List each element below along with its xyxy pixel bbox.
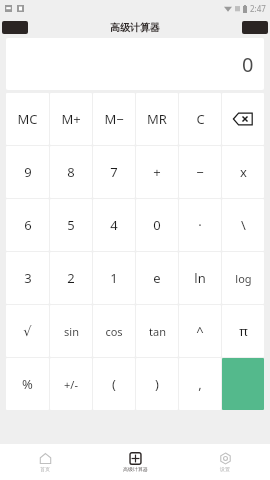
staticText: sin	[64, 324, 79, 339]
button[interactable]: 0	[6, 38, 264, 90]
staticText: 2	[67, 269, 75, 287]
button[interactable]: 5	[50, 199, 92, 251]
staticText: ln	[194, 269, 206, 287]
staticText: MR	[147, 110, 167, 128]
staticText: 9	[24, 163, 32, 181]
staticText: %	[22, 375, 33, 393]
button[interactable]: (	[93, 358, 135, 410]
staticText: ,	[198, 375, 202, 393]
staticText: 6	[24, 216, 32, 234]
button[interactable]: √	[6, 305, 49, 357]
staticText: 1	[110, 269, 118, 287]
button[interactable]: ·	[179, 199, 221, 251]
button[interactable]: 6	[6, 199, 49, 251]
button[interactable]: cos	[93, 305, 135, 357]
button[interactable]: +	[136, 146, 178, 198]
staticText: M−	[104, 110, 124, 128]
button[interactable]: π	[222, 305, 264, 357]
button[interactable]: Backspace	[222, 93, 264, 145]
staticText: log	[235, 271, 252, 286]
button[interactable]: +/-	[50, 358, 92, 410]
staticText: 高级计算器	[110, 21, 160, 34]
button[interactable]: \	[222, 199, 264, 251]
button[interactable]: 设置	[180, 444, 270, 480]
button[interactable]: sin	[50, 305, 92, 357]
staticText: 5	[67, 216, 75, 234]
staticText: 首页	[40, 466, 50, 472]
button[interactable]: 4	[93, 199, 135, 251]
button[interactable]: 3	[6, 252, 49, 304]
staticText: C	[196, 110, 205, 128]
staticText: −	[196, 163, 204, 181]
button[interactable]: MC	[6, 93, 49, 145]
staticText: 3	[24, 269, 32, 287]
button[interactable]: 0	[136, 199, 178, 251]
button[interactable]: M−	[93, 93, 135, 145]
button[interactable]: tan	[136, 305, 178, 357]
button[interactable]: %	[6, 358, 49, 410]
button[interactable]: 2	[50, 252, 92, 304]
button[interactable]: 高级计算器	[90, 444, 180, 480]
button[interactable]: C	[179, 93, 221, 145]
staticText: 2:47	[250, 3, 266, 14]
staticText: 高级计算器	[123, 466, 148, 472]
staticText: \	[241, 216, 246, 234]
button[interactable]: e	[136, 252, 178, 304]
button[interactable]: ln	[179, 252, 221, 304]
button[interactable]: MR	[136, 93, 178, 145]
staticText: (	[112, 375, 116, 393]
button[interactable]: log	[222, 252, 264, 304]
button[interactable]: −	[179, 146, 221, 198]
staticText: 8	[67, 163, 75, 181]
staticText: 0	[242, 51, 254, 78]
staticText: )	[155, 375, 159, 393]
staticText: tan	[149, 324, 166, 339]
staticText: M+	[61, 110, 81, 128]
staticText: 0	[153, 216, 161, 234]
staticText: 4	[110, 216, 118, 234]
staticText: +/-	[64, 377, 78, 392]
button[interactable]: 8	[50, 146, 92, 198]
button[interactable]: M+	[50, 93, 92, 145]
button[interactable]: ,	[179, 358, 221, 410]
staticText: √	[23, 324, 32, 339]
button[interactable]: x	[222, 146, 264, 198]
staticText: x	[240, 163, 247, 181]
staticText: ·	[198, 216, 202, 234]
staticText: cos	[105, 324, 123, 339]
staticText: e	[153, 269, 161, 287]
button[interactable]: 7	[93, 146, 135, 198]
staticText: ^	[196, 322, 204, 340]
staticText: 设置	[220, 466, 230, 472]
staticText: 7	[110, 163, 118, 181]
staticText: +	[153, 163, 161, 181]
button[interactable]: 1	[93, 252, 135, 304]
button[interactable]: )	[136, 358, 178, 410]
staticText: MC	[17, 110, 38, 128]
button[interactable]: ^	[179, 305, 221, 357]
button[interactable]: 首页	[0, 444, 90, 480]
button[interactable]: 9	[6, 146, 49, 198]
staticText: π	[239, 322, 248, 340]
